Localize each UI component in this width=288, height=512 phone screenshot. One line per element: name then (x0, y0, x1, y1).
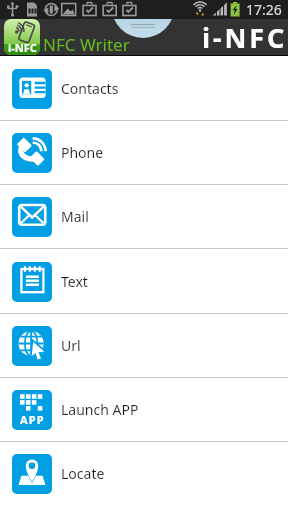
staticText: Locate (61, 464, 105, 483)
button[interactable]: Text (0, 249, 288, 314)
staticText: Launch APP (61, 400, 139, 419)
staticText: Url (61, 336, 81, 355)
staticText: i-NFC (202, 19, 288, 56)
button[interactable]: Contacts (0, 56, 288, 121)
staticText: Contacts (61, 79, 119, 98)
staticText: i-NFC (8, 40, 37, 55)
button[interactable]: Locate (0, 441, 288, 506)
staticText: NFC Writer (43, 33, 130, 56)
staticText: APP (20, 412, 45, 427)
button[interactable]: APP (0, 377, 288, 442)
staticText: 17:26 (246, 0, 282, 19)
staticText: Text (61, 272, 88, 291)
staticText: Phone (61, 143, 104, 162)
button[interactable]: Mail (0, 184, 288, 249)
button[interactable]: Url (0, 313, 288, 378)
staticText: Mail (61, 207, 89, 226)
button[interactable]: Phone (0, 120, 288, 185)
